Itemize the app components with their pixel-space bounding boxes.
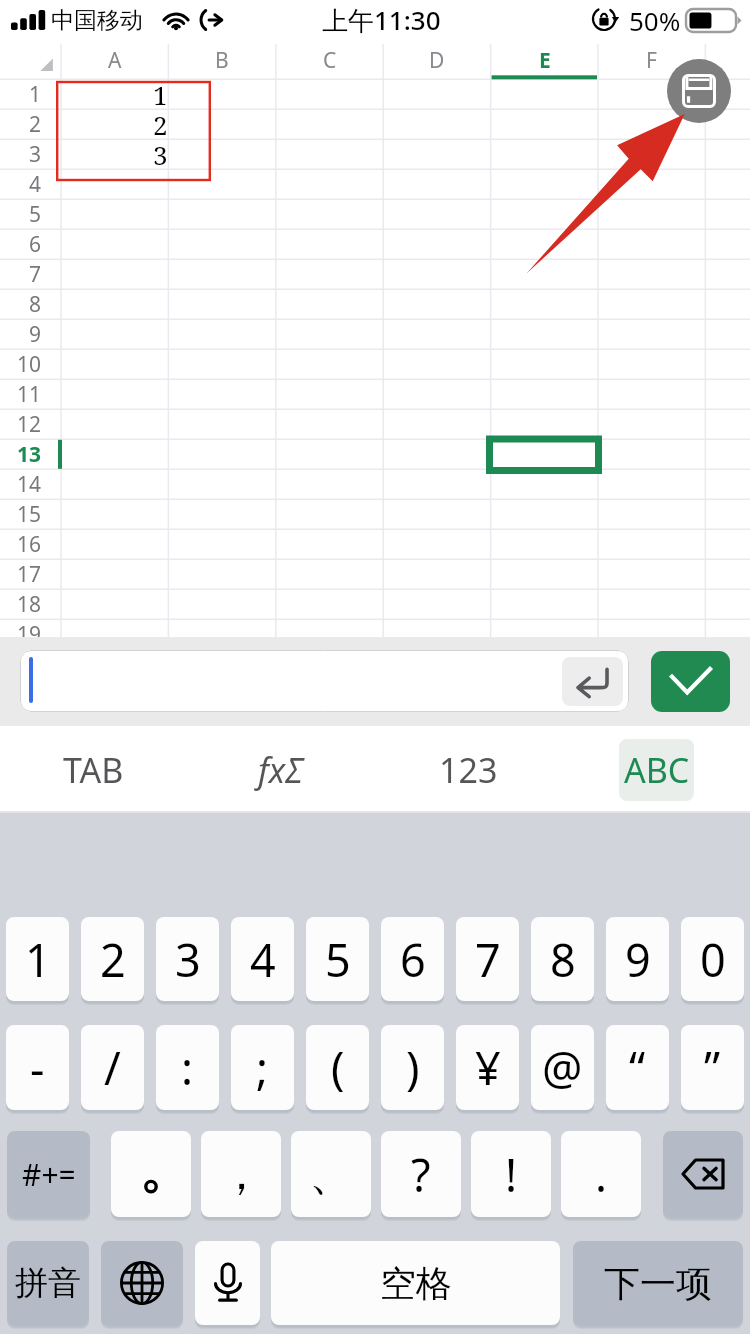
button[interactable]: 4 <box>0 169 42 199</box>
button[interactable]: 10 <box>0 349 42 379</box>
staticText: 1 <box>153 77 168 107</box>
button[interactable]: 15 <box>0 499 42 529</box>
staticText: 3 <box>153 137 168 167</box>
staticText: 14 <box>17 470 42 499</box>
staticText: 2 <box>100 929 126 990</box>
staticText: 2 <box>29 110 42 139</box>
button[interactable]: 7 <box>456 917 519 1001</box>
button[interactable]: 5 <box>306 917 369 1001</box>
staticText: - <box>30 1037 45 1098</box>
button[interactable]: 16 <box>0 529 42 559</box>
button[interactable]: 3 <box>156 917 219 1001</box>
button[interactable] <box>663 1131 743 1217</box>
button[interactable]: 3 <box>0 139 42 169</box>
button[interactable]: TAB <box>0 726 187 813</box>
button[interactable]: #+= <box>7 1131 90 1217</box>
staticText: 1 <box>25 929 51 990</box>
button[interactable]: @ <box>531 1025 594 1110</box>
button[interactable]: ( <box>306 1025 369 1110</box>
button[interactable]: D <box>383 44 490 77</box>
button[interactable]: 8 <box>531 917 594 1001</box>
button[interactable] <box>111 1131 191 1217</box>
staticText: 、 <box>309 1146 354 1203</box>
button[interactable]: ; <box>231 1025 294 1110</box>
button[interactable]: 17 <box>0 559 42 589</box>
button[interactable]: Save <box>667 59 731 123</box>
button[interactable]: B <box>168 44 275 77</box>
staticText: @ <box>542 1037 583 1098</box>
button[interactable]: / <box>81 1025 144 1110</box>
button[interactable]: - <box>6 1025 69 1110</box>
button[interactable]: Confirm <box>651 651 730 712</box>
button[interactable]: ¥ <box>456 1025 519 1110</box>
button[interactable]: ABC <box>619 739 694 801</box>
button[interactable]: “ <box>606 1025 669 1110</box>
button[interactable]: 14 <box>0 469 42 499</box>
button[interactable]: 2 <box>81 917 144 1001</box>
button[interactable]: 19 <box>0 619 42 649</box>
button[interactable]: ” <box>681 1025 744 1110</box>
staticText: 5 <box>325 929 351 990</box>
staticText: 0 <box>700 929 726 990</box>
staticText: ABC <box>624 747 690 793</box>
button[interactable]: 9 <box>606 917 669 1001</box>
button[interactable]: 6 <box>381 917 444 1001</box>
button[interactable]: 、 <box>291 1131 371 1217</box>
staticText: / <box>104 1037 121 1098</box>
button[interactable]: 5 <box>0 199 42 229</box>
button[interactable]: 11 <box>0 379 42 409</box>
staticText: 2 <box>153 107 168 137</box>
button[interactable]: 12 <box>0 409 42 439</box>
button[interactable] <box>101 1241 183 1325</box>
button[interactable]: . <box>561 1131 641 1217</box>
staticText: ( <box>331 1037 345 1098</box>
staticText: ; <box>256 1037 269 1098</box>
button[interactable]: 13 <box>0 439 42 469</box>
button[interactable]: 7 <box>0 259 42 289</box>
button[interactable]: 2 <box>0 109 42 139</box>
button[interactable]: 18 <box>0 589 42 619</box>
button[interactable]: F <box>598 44 705 77</box>
staticText: 下一项 <box>604 1261 712 1306</box>
button[interactable]: ? <box>381 1131 461 1217</box>
button[interactable]: 4 <box>231 917 294 1001</box>
button[interactable]: 拼音 <box>7 1241 89 1325</box>
staticText: 17 <box>17 560 42 589</box>
button[interactable]: 1 <box>0 79 42 109</box>
button[interactable]: 空格 <box>271 1241 560 1325</box>
staticText: 1 <box>29 80 42 109</box>
button[interactable]: 1 <box>6 917 69 1001</box>
button[interactable]: 6 <box>0 229 42 259</box>
button[interactable]: A <box>61 44 168 77</box>
button[interactable]: C <box>276 44 383 77</box>
staticText: C <box>323 46 337 75</box>
staticText: “ <box>629 1037 646 1098</box>
staticText: 中国移动 <box>51 6 143 35</box>
staticText: TAB <box>63 747 124 793</box>
staticText: 11 <box>17 380 42 409</box>
button[interactable]: 123 <box>374 726 562 813</box>
staticText: A <box>108 46 122 75</box>
staticText: 7 <box>29 260 42 289</box>
button[interactable]: fxΣ <box>187 726 374 813</box>
staticText: D <box>429 46 445 75</box>
button[interactable]: ) <box>381 1025 444 1110</box>
staticText: 50% <box>629 3 681 38</box>
button[interactable]: G <box>705 44 750 77</box>
button[interactable]: ， <box>201 1131 281 1217</box>
staticText: 10 <box>17 350 42 379</box>
button[interactable]: Enter <box>562 657 623 706</box>
button[interactable]: Enter <box>20 650 629 712</box>
staticText: 空格 <box>380 1261 452 1306</box>
staticText: 8 <box>29 290 42 319</box>
button[interactable]: 0 <box>681 917 744 1001</box>
button[interactable] <box>195 1241 260 1325</box>
staticText: 16 <box>17 530 42 559</box>
button[interactable]: ! <box>471 1131 551 1217</box>
button[interactable]: 8 <box>0 289 42 319</box>
button[interactable]: E <box>491 44 598 77</box>
staticText: ? <box>411 1144 431 1205</box>
button[interactable]: 9 <box>0 319 42 349</box>
button[interactable]: : <box>156 1025 219 1110</box>
button[interactable]: 下一项 <box>573 1241 743 1325</box>
